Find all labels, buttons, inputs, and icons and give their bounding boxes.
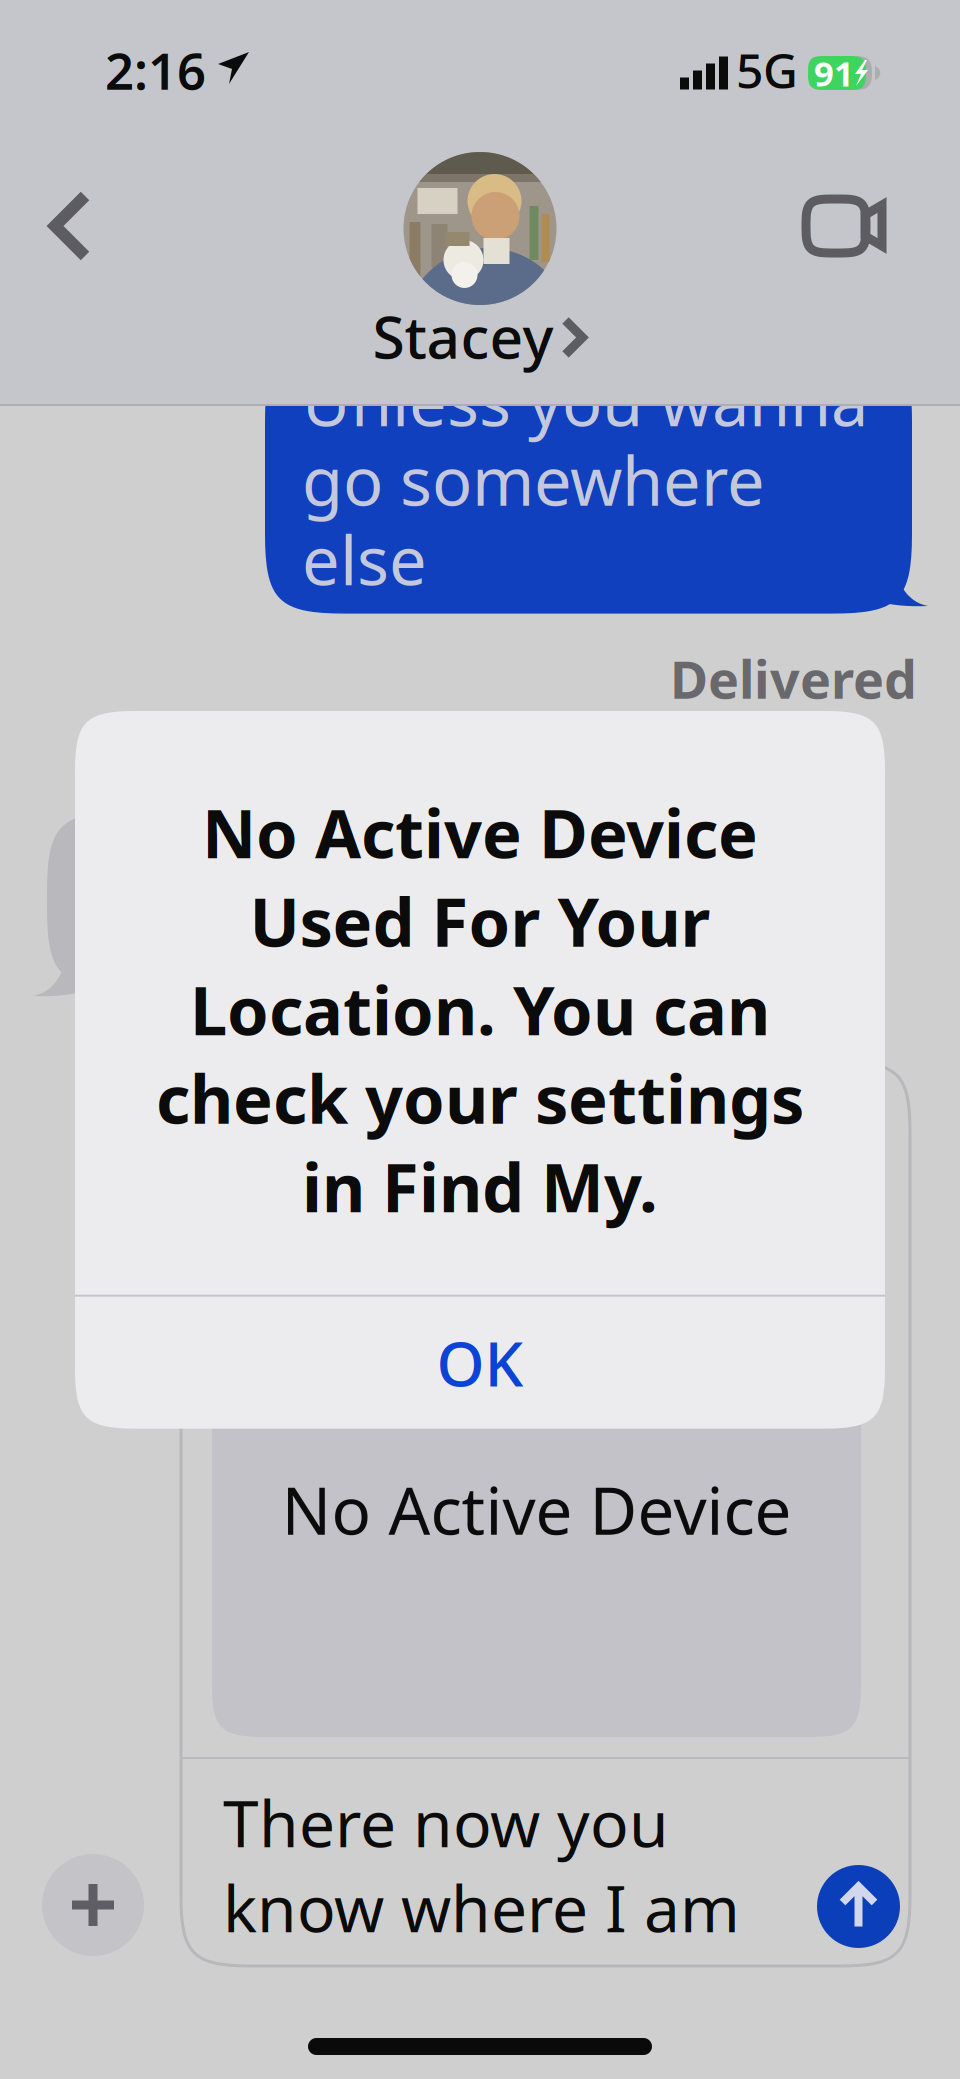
staticText: Unless you wanna: [302, 356, 868, 444]
staticText: check your settings: [156, 1054, 804, 1142]
staticText: 5G: [736, 38, 798, 102]
staticText: know where I am: [223, 1865, 740, 1950]
staticText: 2:16: [105, 36, 206, 104]
staticText: in Find My.: [302, 1142, 658, 1231]
staticText: else: [302, 515, 427, 604]
staticText: go somewhere: [302, 435, 765, 524]
button[interactable]: Stacey: [372, 297, 587, 375]
button[interactable]: Add attachment: [42, 1854, 144, 1956]
staticText: Location. You can: [190, 965, 770, 1054]
button[interactable]: Send: [817, 1865, 900, 1948]
staticText: Delivered: [670, 644, 917, 713]
button[interactable]: OK: [75, 1297, 885, 1429]
staticText: 91: [814, 50, 854, 96]
staticText: Stacey: [372, 297, 553, 375]
staticText: There now you: [223, 1780, 669, 1865]
staticText: No Active Device: [281, 1466, 791, 1553]
staticText: OK: [436, 1322, 523, 1403]
staticText: Used For Your: [249, 876, 710, 965]
staticText: No Active Device: [202, 788, 758, 876]
button[interactable]: Back: [49, 190, 93, 262]
button[interactable]: FaceTime video call: [806, 199, 888, 253]
